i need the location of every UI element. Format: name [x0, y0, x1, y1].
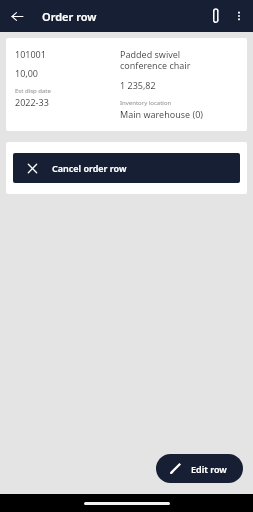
staticText: Padded swivel conference chair: [120, 48, 191, 72]
staticText: Main warehouse (0): [120, 108, 204, 120]
button[interactable]: Cancel order row: [13, 153, 240, 183]
staticText: Inventory location: [120, 99, 172, 107]
staticText: Edit row: [191, 463, 227, 475]
staticText: 10,00: [15, 67, 39, 79]
button[interactable]: Edit row: [156, 454, 243, 483]
staticText: 101001: [15, 48, 46, 60]
staticText: 2022-33: [15, 96, 49, 108]
button[interactable]: Back: [5, 4, 29, 28]
staticText: Order row: [42, 9, 97, 24]
staticText: 1 235,82: [120, 79, 156, 91]
button[interactable]: Attachment: [204, 4, 228, 28]
staticText: Cancel order row: [52, 162, 127, 174]
button[interactable]: 101001: [6, 38, 247, 131]
button[interactable]: More options: [228, 5, 250, 27]
staticText: Est disp date: [15, 87, 51, 95]
